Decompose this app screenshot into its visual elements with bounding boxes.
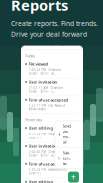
button[interactable]: User editing xyxy=(21,124,83,142)
button[interactable]: User editing xyxy=(21,178,83,183)
staticText: ☆ xyxy=(57,156,61,160)
staticText: 4:11:12 PM Hugo Rossi Buyer 01 xyxy=(28,132,66,139)
staticText: User invitation xyxy=(28,143,57,149)
staticText: + xyxy=(71,172,76,182)
staticText: Firm of use accepted xyxy=(28,161,68,166)
staticText: ıll xyxy=(68,32,71,37)
button[interactable]: ☆ xyxy=(55,148,83,169)
staticText: Activity log xyxy=(34,39,64,47)
button[interactable]: Back xyxy=(25,39,32,46)
button[interactable]: Create report xyxy=(68,172,79,183)
staticText: Create reports. Find trends. xyxy=(11,19,98,28)
staticText: Send via email xyxy=(62,123,70,145)
staticText: User invitation xyxy=(28,79,57,85)
staticText: ‹ xyxy=(27,38,30,48)
staticText: Subscribe xyxy=(62,150,70,166)
staticText: Firm of use accepted xyxy=(28,97,68,102)
staticText: 1:30:24 PM Emma Roberts Buyer 01 xyxy=(28,168,68,175)
button[interactable]: Filter xyxy=(72,39,79,46)
staticText: User editing xyxy=(28,125,53,131)
staticText: 9:41 xyxy=(25,32,32,37)
staticText: Drive your deal forward xyxy=(11,30,87,39)
staticText: Reports xyxy=(11,0,68,15)
button[interactable]: ↓ xyxy=(55,121,83,147)
button[interactable]: Firm of use accepted xyxy=(21,160,83,178)
button[interactable]: File viewed xyxy=(21,60,83,78)
staticText: File viewed xyxy=(28,61,48,67)
staticText: ↓ xyxy=(58,132,61,136)
staticText: 1:30:24 PM Charlotte Becker Seller - ac… xyxy=(28,68,61,75)
staticText: User editing xyxy=(28,179,53,183)
staticText: Today xyxy=(25,53,35,58)
staticText: 1:04:40 PM Charlotte Becker Seller - ac… xyxy=(28,150,61,157)
button[interactable]: Firm of use accepted xyxy=(21,96,83,114)
staticText: Yesterday xyxy=(25,117,42,122)
button[interactable]: User invitation xyxy=(21,142,83,160)
button[interactable]: User invitation xyxy=(21,78,83,96)
staticText: 11:02:11 AM Charlotte Becker Seller - c… xyxy=(28,86,63,93)
staticText: 1:22:11 PM Ilan Yarwood Administrator xyxy=(28,104,67,111)
